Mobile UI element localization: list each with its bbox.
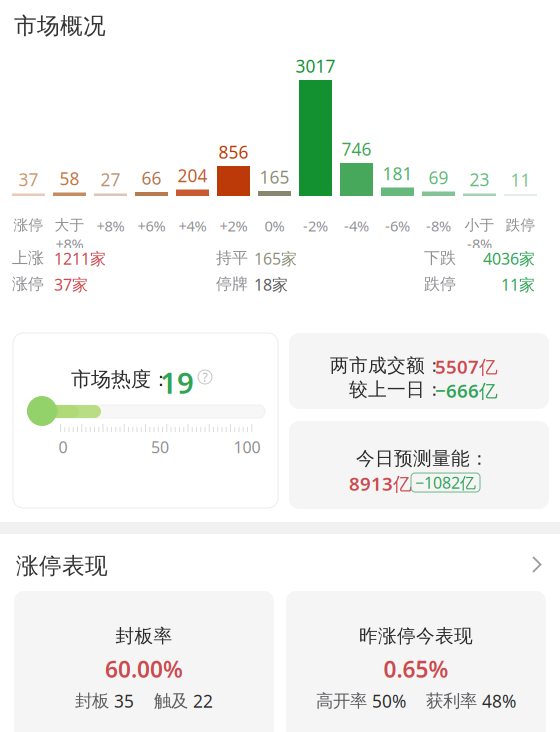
staticText: 11 bbox=[510, 168, 530, 191]
staticText: 两市成交额： bbox=[330, 354, 444, 377]
staticText: 获利率 bbox=[426, 690, 477, 712]
staticText: 市场概况 bbox=[14, 12, 106, 40]
staticText: 4036家 bbox=[483, 248, 535, 269]
staticText: 856 bbox=[218, 140, 248, 163]
staticText: 0.65% bbox=[383, 654, 448, 684]
staticText: −1082亿 bbox=[415, 472, 476, 493]
staticText: 19 bbox=[160, 363, 194, 402]
staticText: 较上一日： bbox=[349, 378, 444, 401]
staticText: 165 bbox=[259, 165, 289, 188]
staticText: -4% bbox=[344, 216, 369, 235]
staticText: 37家 bbox=[54, 274, 88, 295]
staticText: 涨停 bbox=[13, 216, 43, 234]
staticText: 165家 bbox=[254, 248, 297, 269]
staticText: 66 bbox=[141, 166, 161, 189]
staticText: 37 bbox=[18, 168, 38, 191]
staticText: 1211家 bbox=[54, 248, 106, 269]
staticText: 746 bbox=[341, 137, 371, 160]
staticText: 100 bbox=[233, 436, 260, 458]
button[interactable]: 涨停表现 bbox=[0, 534, 560, 590]
staticText: 58 bbox=[59, 167, 79, 190]
staticText: 11家 bbox=[501, 274, 535, 295]
staticText: 23 bbox=[469, 168, 489, 191]
staticText: 27 bbox=[100, 168, 120, 191]
staticText: 0% bbox=[264, 216, 284, 235]
staticText: 3017 bbox=[295, 54, 335, 77]
staticText: 持平 bbox=[216, 248, 248, 268]
staticText: -8% bbox=[426, 216, 451, 235]
staticText: 小于 bbox=[464, 216, 494, 234]
staticText: ? bbox=[202, 369, 207, 385]
staticText: 22 bbox=[193, 689, 213, 712]
staticText: -8% bbox=[467, 234, 492, 253]
staticText: 高开率 bbox=[316, 690, 367, 712]
staticText: 35 bbox=[114, 689, 134, 712]
staticText: 涨停表现 bbox=[16, 552, 108, 580]
staticText: −666亿 bbox=[435, 378, 498, 403]
staticText: 0 bbox=[58, 436, 67, 458]
staticText: 封板 bbox=[75, 690, 109, 712]
staticText: 60.00% bbox=[105, 654, 183, 684]
staticText: 5507亿 bbox=[435, 354, 498, 379]
staticText: 8913亿 bbox=[349, 471, 412, 496]
staticText: +2% bbox=[219, 216, 247, 235]
staticText: 大于 bbox=[54, 216, 84, 234]
staticText: 18家 bbox=[254, 274, 288, 295]
staticText: 今日预测量能： bbox=[356, 447, 489, 470]
staticText: 涨停 bbox=[12, 274, 44, 294]
staticText: +4% bbox=[178, 216, 206, 235]
staticText: 市场热度： bbox=[71, 367, 171, 392]
staticText: 触及 bbox=[154, 690, 188, 712]
staticText: 204 bbox=[177, 164, 207, 187]
staticText: 封板率 bbox=[115, 624, 172, 647]
staticText: 50% bbox=[372, 689, 406, 712]
staticText: 69 bbox=[428, 166, 448, 189]
staticText: +6% bbox=[137, 216, 165, 235]
staticText: -6% bbox=[385, 216, 410, 235]
staticText: 上涨 bbox=[12, 248, 44, 268]
staticText: 昨涨停今表现 bbox=[359, 624, 473, 647]
staticText: 下跌 bbox=[424, 248, 456, 268]
staticText: 跌停 bbox=[424, 274, 456, 294]
staticText: 181 bbox=[382, 162, 412, 185]
staticText: 跌停 bbox=[505, 216, 535, 234]
staticText: -2% bbox=[303, 216, 328, 235]
staticText: +8% bbox=[55, 234, 83, 253]
staticText: +8% bbox=[96, 216, 124, 235]
staticText: 48% bbox=[482, 689, 516, 712]
staticText: 50 bbox=[151, 436, 169, 458]
staticText: 停牌 bbox=[216, 274, 248, 294]
